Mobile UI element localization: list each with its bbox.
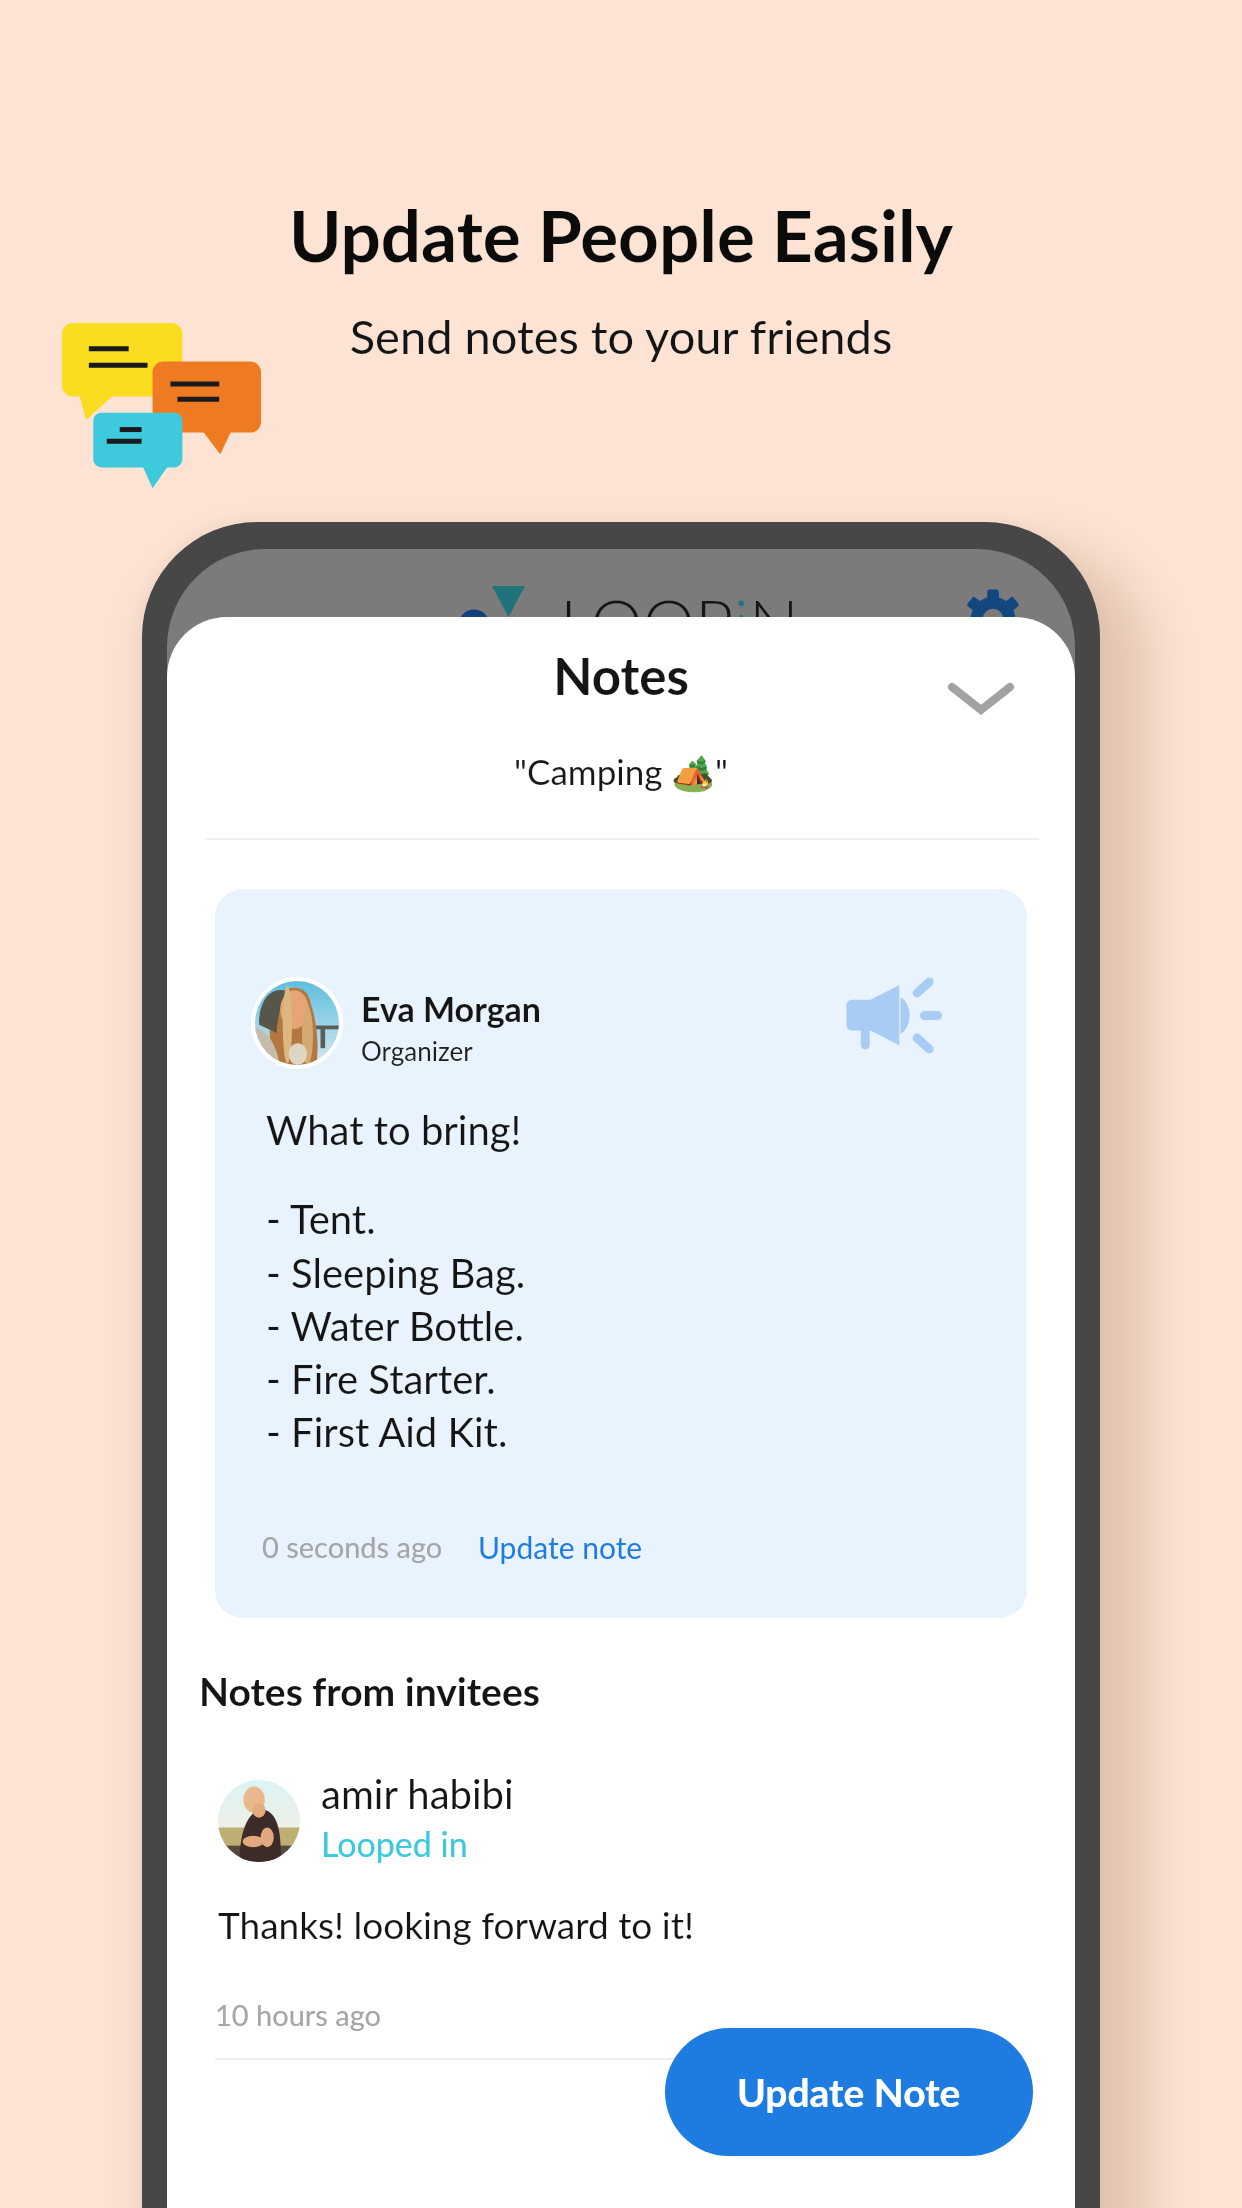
staticText: Eva Morgan: [361, 988, 542, 1029]
staticText: 0 seconds ago: [262, 1529, 443, 1564]
staticText: Send notes to your friends: [0, 308, 1242, 364]
staticText: Update Note: [737, 2069, 961, 2116]
button[interactable]: Update Note: [665, 2028, 1033, 2156]
staticText: Looped in: [321, 1823, 468, 1864]
staticText: i: [734, 582, 749, 661]
button[interactable]: Collapse: [928, 659, 1020, 745]
staticText: amir habibi: [321, 1770, 514, 1818]
staticText: Thanks! looking forward to it!: [218, 1902, 694, 1946]
staticText: - Tent. - Sleeping Bag. - Water Bottle. …: [266, 1195, 526, 1455]
staticText: "Camping 🏕": [167, 750, 1075, 793]
button[interactable]: Eva Morgan: [215, 889, 1027, 1618]
staticText: What to bring!: [266, 1106, 522, 1154]
staticText: Update People Easily: [0, 192, 1242, 277]
button[interactable]: Announce: [845, 976, 943, 1055]
staticText: N: [749, 582, 799, 661]
staticText: Notes from invitees: [199, 1668, 540, 1715]
staticText: Notes: [167, 645, 1075, 706]
staticText: 10 hours ago: [215, 1997, 382, 2032]
staticText: LOOP: [560, 582, 734, 661]
button[interactable]: Update note: [478, 1529, 643, 1565]
staticText: Organizer: [361, 1035, 473, 1066]
